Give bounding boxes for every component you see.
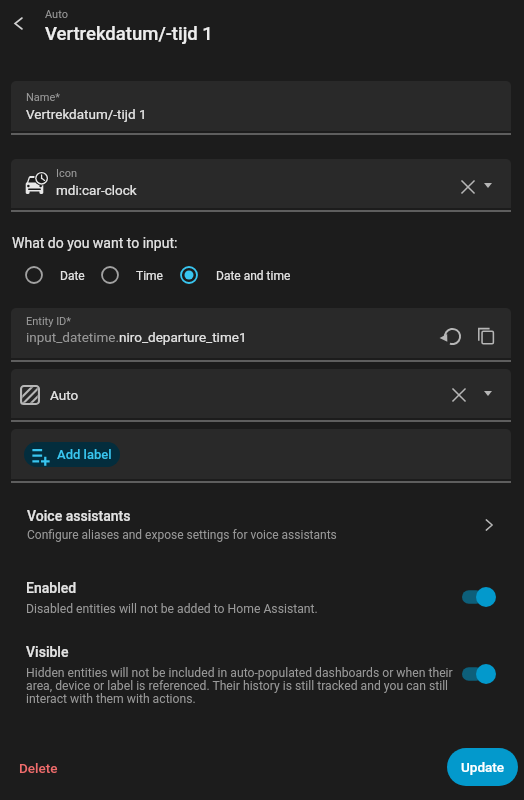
staticText: Auto [50,387,79,403]
button[interactable] [11,308,511,358]
staticText: Update [461,759,505,775]
staticText: Visible [26,644,69,660]
staticText: mdi:car-clock [56,182,137,198]
staticText: Configure aliases and expose settings fo… [27,528,337,542]
staticText: Entity ID* [26,315,72,328]
button[interactable]: Update [447,748,518,786]
staticText: Add label [57,447,112,462]
staticText: Voice assistants [27,508,131,524]
button[interactable]: Voice assistants [0,497,524,552]
button[interactable]: Clear [443,379,475,411]
button[interactable] [11,159,511,208]
button[interactable]: Back [2,7,34,39]
staticText: Time [136,269,163,283]
staticText: Icon [56,167,78,180]
button[interactable] [11,429,511,479]
button[interactable] [0,632,524,720]
button[interactable] [11,369,511,418]
button[interactable]: Show options [472,377,504,409]
staticText: Auto [45,8,68,21]
button[interactable] [0,568,524,626]
button[interactable]: Toggle [457,578,501,616]
button[interactable]: Clear [452,171,484,203]
button[interactable]: Copy entity ID [470,320,502,352]
button[interactable]: Add label [24,442,120,467]
staticText: Enabled [26,580,77,596]
button[interactable]: Reset entity ID [436,320,468,352]
button[interactable] [176,257,320,293]
button[interactable]: Delete [8,750,68,786]
button[interactable] [11,81,511,131]
staticText: Name* [26,91,61,104]
button[interactable] [97,257,168,293]
staticText: input_datetime.niro_departure_time1 [26,329,247,345]
button[interactable]: Show options [472,169,504,201]
staticText: Disabled entities will not be added to H… [26,602,318,616]
staticText: Delete [19,760,58,776]
button[interactable] [21,257,93,293]
staticText: Hidden entities will not be included in … [26,666,456,706]
staticText: Vertrekdatum/-tijd 1 [26,106,147,122]
staticText: Date [60,269,85,283]
button[interactable]: Toggle [457,655,501,693]
staticText: What do you want to input: [12,235,178,251]
staticText: Date and time [216,269,291,283]
staticText: Vertrekdatum/-tijd 1 [45,23,213,45]
